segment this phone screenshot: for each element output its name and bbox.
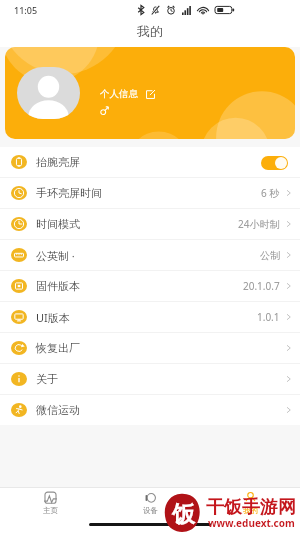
staticText: www.eduext.com <box>208 516 295 530</box>
staticText: 关于 <box>36 372 58 386</box>
staticText: 1.0.1 <box>257 310 280 324</box>
staticText: 我的 <box>243 506 258 515</box>
staticText: 11:05 <box>14 4 38 16</box>
button[interactable]: 固件版本 <box>0 271 300 301</box>
button[interactable]: 设备 <box>100 491 200 515</box>
staticText: 恢复出厂 <box>36 341 80 355</box>
staticText: 微信运动 <box>36 403 80 417</box>
staticText: 饭 <box>172 500 195 529</box>
staticText: 时间模式 <box>36 217 80 231</box>
button[interactable]: 关于 <box>0 364 300 394</box>
other: Edit profile <box>146 90 155 99</box>
staticText: 公英制 · <box>36 248 75 263</box>
button[interactable]: 个人信息 <box>5 47 295 139</box>
staticText: 主页 <box>43 506 58 515</box>
button[interactable]: UI版本 <box>0 302 300 332</box>
staticText: 20.1.0.7 <box>243 279 280 293</box>
staticText: 设备 <box>143 506 158 515</box>
button[interactable]: 微信运动 <box>0 395 300 425</box>
button[interactable]: 手环亮屏时间 <box>0 178 300 208</box>
button[interactable]: 主页 <box>0 491 100 515</box>
staticText: 6 秒 <box>261 186 280 200</box>
button[interactable]: 时间模式 <box>0 209 300 239</box>
staticText: UI版本 <box>36 310 70 325</box>
staticText: 我的 <box>137 23 163 39</box>
staticText: 公制 <box>260 249 280 262</box>
button[interactable]: 我的 <box>200 491 300 515</box>
staticText: 个人信息 <box>100 88 138 100</box>
button[interactable]: 恢复出厂 <box>0 333 300 363</box>
button[interactable]: 抬腕亮屏 <box>0 147 300 177</box>
staticText: 手环亮屏时间 <box>36 186 102 200</box>
staticText: 固件版本 <box>36 279 80 293</box>
staticText: 抬腕亮屏 <box>36 155 80 169</box>
staticText: 干饭手游网 <box>206 496 296 519</box>
button[interactable]: 公英制 · <box>0 240 300 270</box>
staticText: 24小时制 <box>238 217 280 231</box>
